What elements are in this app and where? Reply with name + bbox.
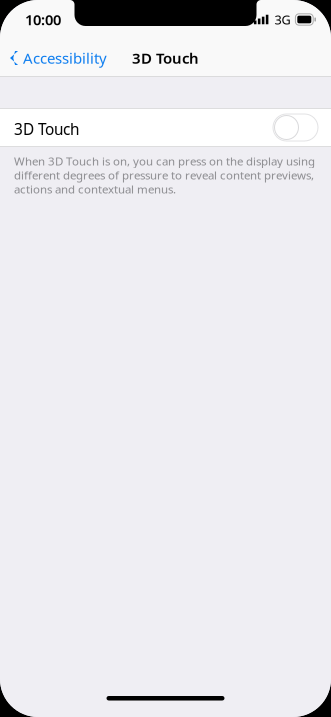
staticText: When 3D Touch is on, you can press on th… xyxy=(14,154,315,196)
staticText: 10:00 xyxy=(25,10,61,29)
staticText: 3G xyxy=(274,11,290,28)
staticText: 3D Touch xyxy=(14,119,79,139)
button[interactable]: Accessibility xyxy=(0,39,117,77)
staticText: 3D Touch xyxy=(132,48,199,68)
staticText: Accessibility xyxy=(23,48,107,68)
button[interactable]: 3D Touch xyxy=(0,108,331,147)
